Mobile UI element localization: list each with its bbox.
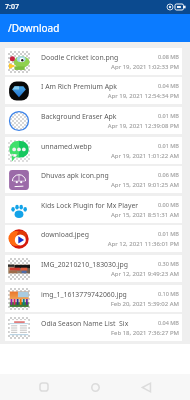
staticText: Apr 15, 2021 8:51:31 AM	[41, 211, 179, 219]
staticText: Apr 19, 2021 1:01:22 AM	[41, 152, 179, 160]
staticText: Odia Season Name List Six	[41, 319, 158, 328]
staticText: 0.08 MB	[158, 53, 179, 60]
staticText: 0.01 MB	[158, 112, 179, 119]
staticText: Apr 15, 2021 9:01:25 AM	[41, 181, 179, 189]
staticText: Apr 19, 2021 12:54:34 PM	[41, 92, 179, 100]
button[interactable]: Odia Season Name List Six	[5, 314, 182, 341]
staticText: 0.00 MB	[158, 201, 179, 208]
staticText: 0.04 MB	[158, 319, 179, 326]
button[interactable]: Back	[133, 374, 160, 400]
staticText: Apr 12, 2021 11:36:01 PM	[41, 240, 179, 248]
button[interactable]: img_1_1613779742060.jpg	[5, 285, 182, 312]
staticText: Feb 20, 2021 5:39:02 AM	[41, 300, 179, 308]
button[interactable]: unnamed.webp	[5, 137, 182, 164]
button[interactable]: Kids Lock Plugin for Mx Player	[5, 196, 182, 223]
button[interactable]: Background Eraser Apk	[5, 107, 182, 134]
staticText: Kids Lock Plugin for Mx Player	[41, 201, 158, 210]
staticText: download.jpeg	[41, 230, 158, 239]
button[interactable]: Dhuvas apk icon.png	[5, 166, 182, 193]
button[interactable]: download.jpeg	[5, 225, 182, 252]
staticText: 0.30 MB	[158, 260, 179, 267]
staticText: Dhuvas apk icon.png	[41, 171, 158, 180]
button[interactable]: Recent apps	[30, 374, 57, 400]
staticText: 0.06 MB	[158, 171, 179, 178]
staticText: Doodle Cricket icon.png	[41, 53, 158, 62]
staticText: img_1_1613779742060.jpg	[41, 290, 158, 299]
button[interactable]: I Am Rich Premium Apk	[5, 77, 182, 104]
button[interactable]: Home	[82, 374, 109, 400]
staticText: IMG_20210210_183030.jpg	[41, 260, 158, 269]
button[interactable]: /Download	[0, 14, 190, 42]
staticText: 0.10 MB	[158, 290, 179, 297]
staticText: I Am Rich Premium Apk	[41, 82, 158, 91]
staticText: Feb 18, 2021 7:36:27 PM	[41, 329, 179, 337]
staticText: 0.01 MB	[158, 230, 179, 237]
staticText: /Download	[8, 21, 60, 35]
staticText: Background Eraser Apk	[41, 112, 158, 121]
staticText: 0.01 MB	[158, 142, 179, 149]
staticText: Apr 19, 2021 12:39:08 PM	[41, 122, 179, 130]
staticText: 7:07	[5, 2, 19, 12]
staticText: 0.04 MB	[158, 82, 179, 89]
staticText: Apr 12, 2021 9:49:23 AM	[41, 270, 179, 278]
button[interactable]: Doodle Cricket icon.png	[5, 48, 182, 75]
staticText: unnamed.webp	[41, 142, 158, 151]
staticText: Apr 19, 2021 1:02:33 PM	[41, 63, 179, 71]
button[interactable]: IMG_20210210_183030.jpg	[5, 255, 182, 282]
